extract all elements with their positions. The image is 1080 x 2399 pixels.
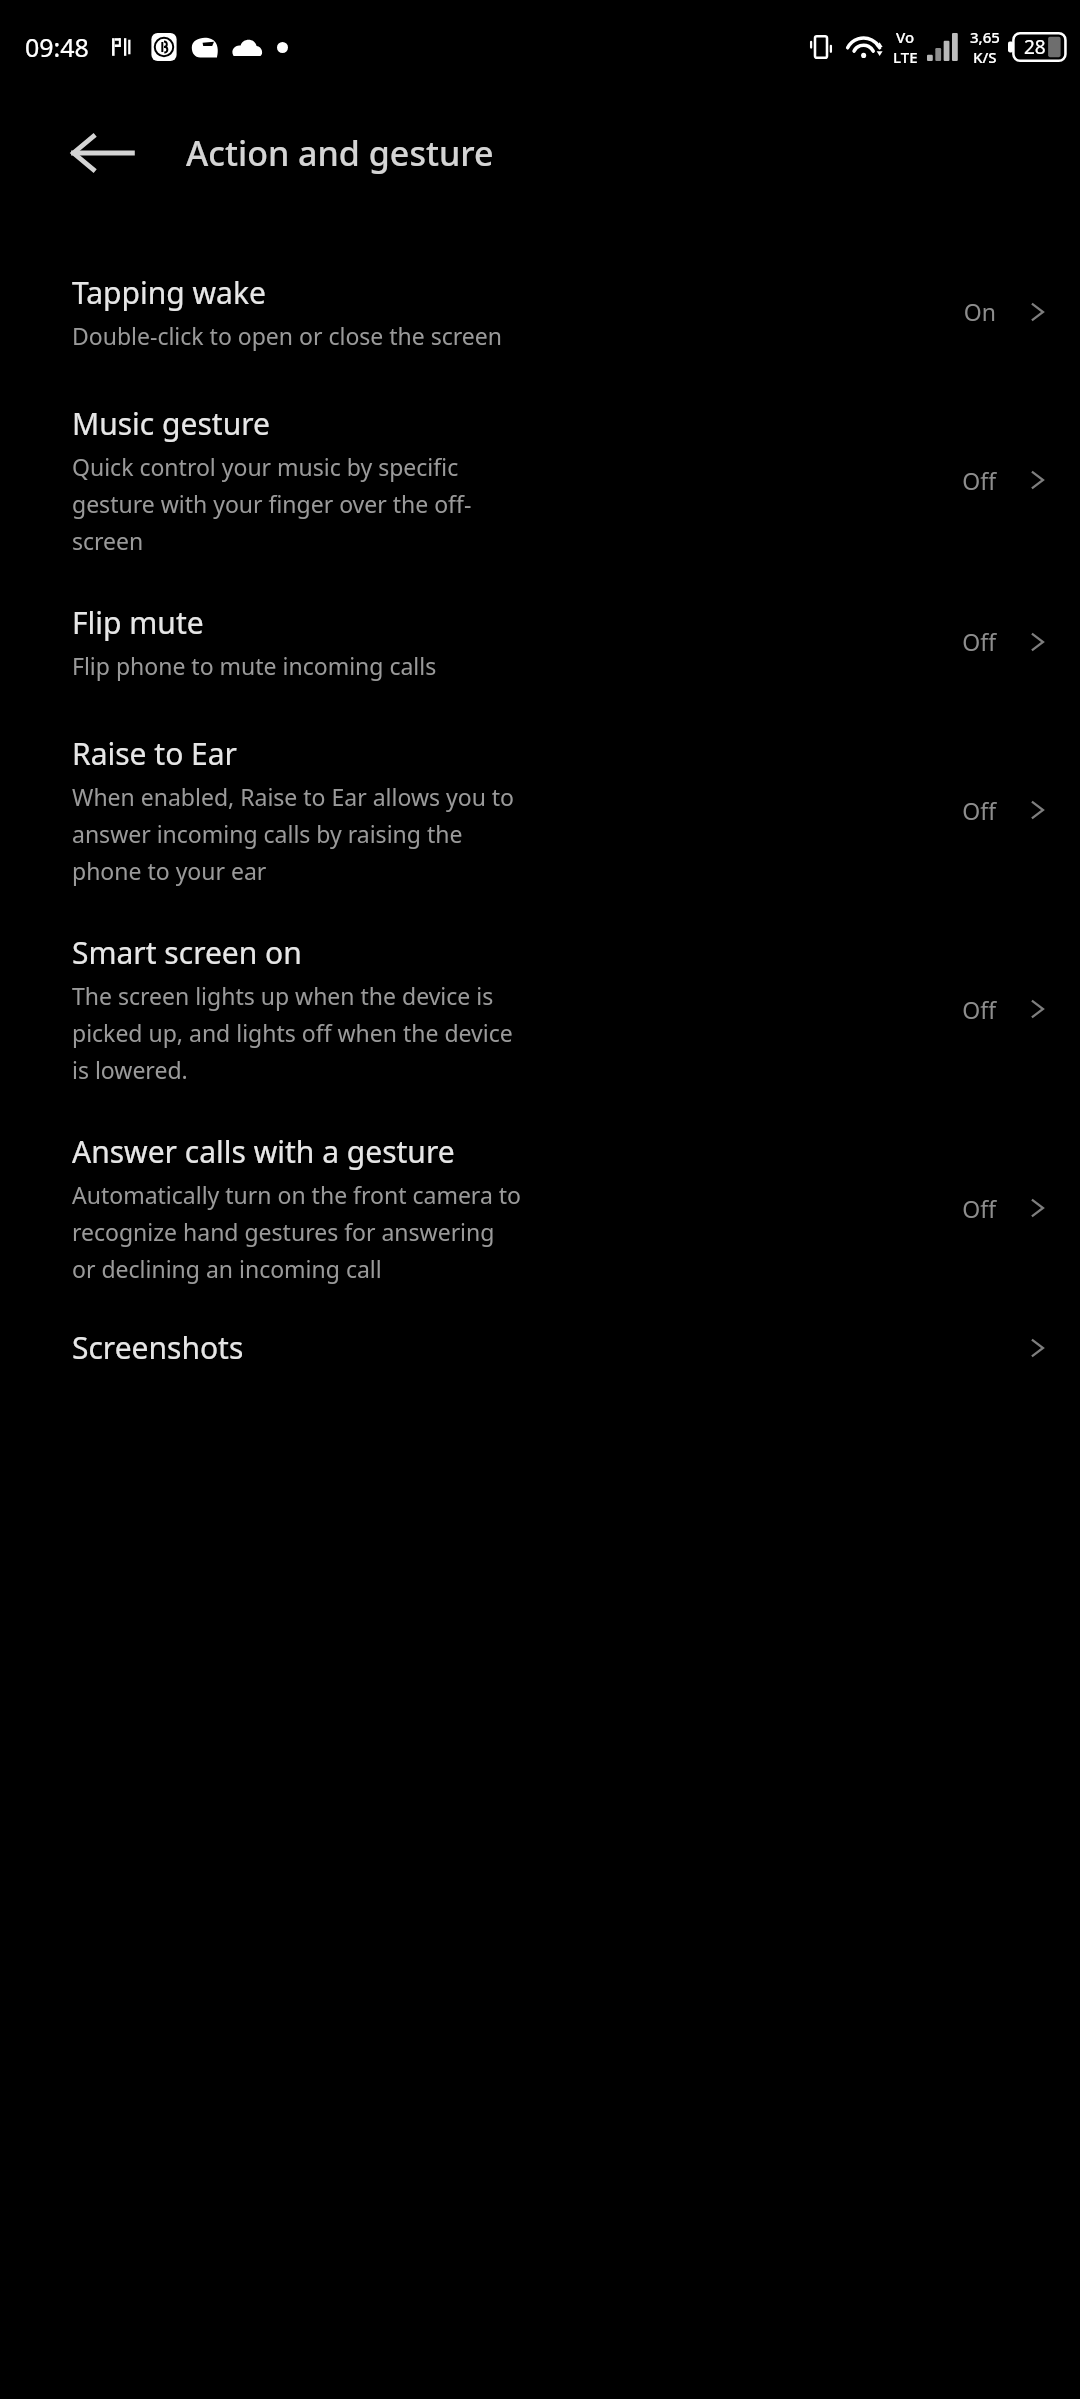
staticText: Flip mute	[72, 602, 204, 643]
button[interactable]: Raise to Ear	[0, 733, 1080, 887]
staticText: Answer calls with a gesture	[72, 1131, 455, 1172]
staticText: Screenshots	[72, 1327, 244, 1368]
staticText: Flip phone to mute incoming calls	[72, 650, 522, 681]
staticText: Music gesture	[72, 403, 270, 444]
staticText: 28	[1024, 34, 1046, 60]
staticText: 3,65	[970, 27, 1000, 47]
staticText: When enabled, Raise to Ear allows you to…	[72, 781, 522, 887]
staticText: Tapping wake	[72, 272, 266, 313]
staticText: On	[963, 296, 996, 327]
staticText: Off	[962, 1193, 996, 1224]
staticText: LTE	[893, 47, 918, 67]
staticText: Off	[962, 626, 996, 657]
staticText: Raise to Ear	[72, 733, 237, 774]
staticText: Off	[962, 994, 996, 1025]
staticText: Action and gesture	[186, 130, 494, 176]
button[interactable]: Screenshots	[0, 1327, 1080, 1368]
staticText: Double-click to open or close the screen	[72, 320, 522, 351]
button[interactable]: Flip mute	[0, 602, 1080, 681]
button[interactable]: Smart screen on	[0, 932, 1080, 1086]
button[interactable]: Back	[48, 109, 156, 197]
staticText: Off	[962, 795, 996, 826]
button[interactable]: Answer calls with a gesture	[0, 1131, 1080, 1285]
staticText: Smart screen on	[72, 932, 302, 973]
button[interactable]: Music gesture	[0, 403, 1080, 557]
staticText: 09:48	[25, 30, 89, 64]
staticText: Vo	[896, 27, 915, 47]
staticText: K/S	[973, 47, 997, 67]
button[interactable]: Tapping wake	[0, 272, 1080, 351]
staticText: Off	[962, 465, 996, 496]
staticText: The screen lights up when the device is …	[72, 980, 522, 1086]
staticText: Quick control your music by specific ges…	[72, 451, 522, 557]
staticText: Automatically turn on the front camera t…	[72, 1179, 522, 1285]
